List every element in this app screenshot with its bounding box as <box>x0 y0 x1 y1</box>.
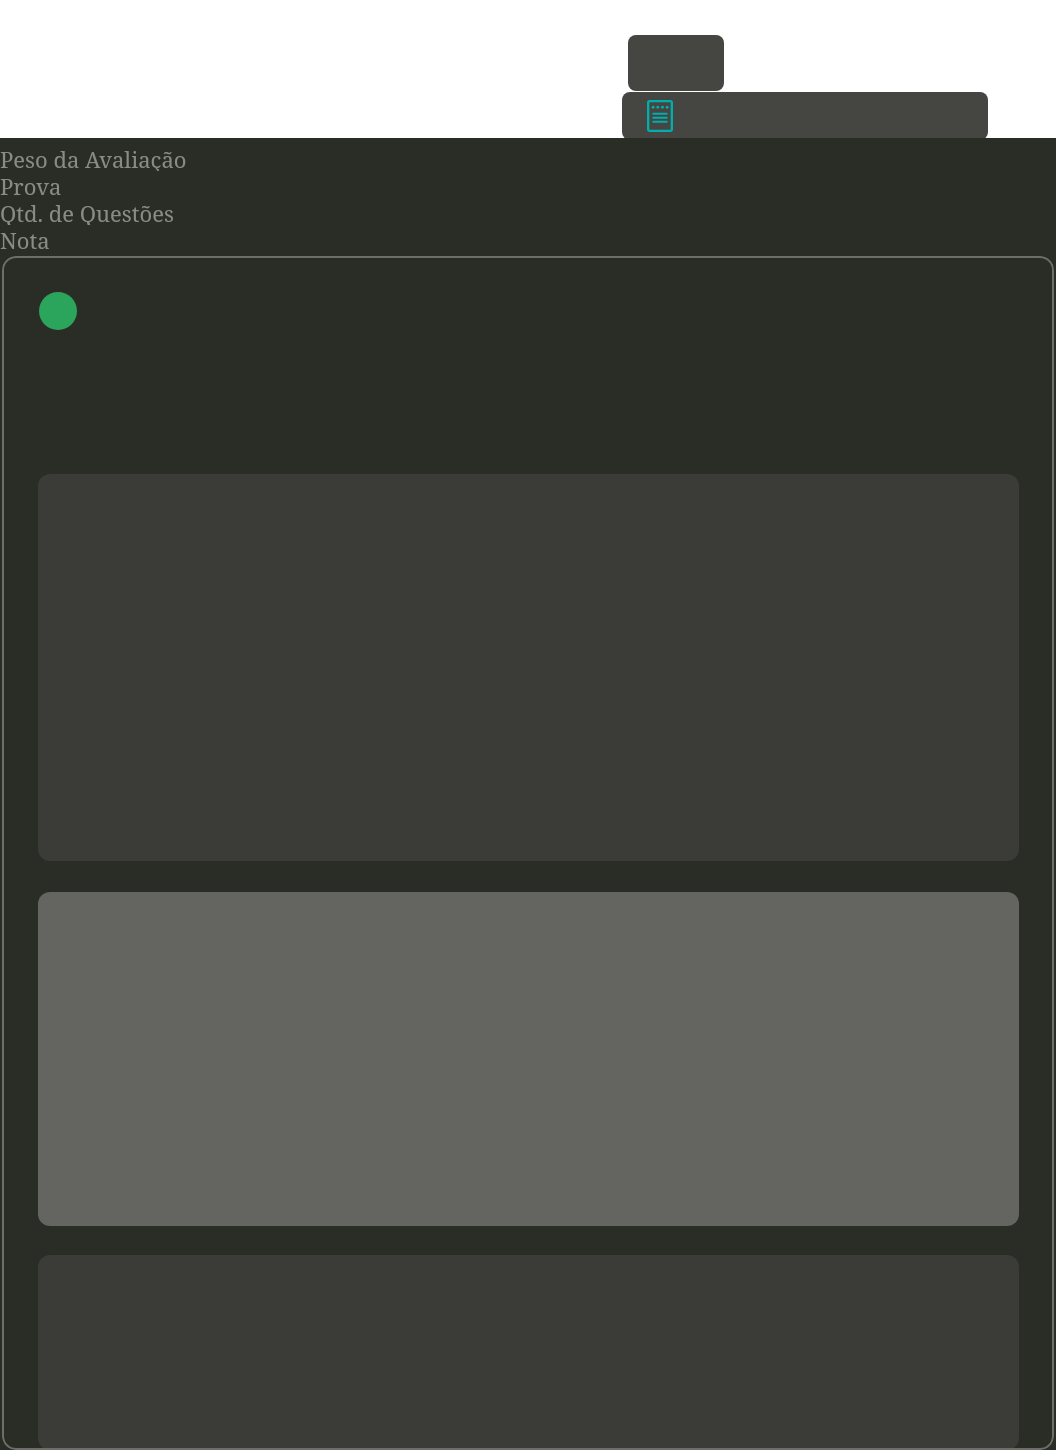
button[interactable]: Status <box>39 292 77 330</box>
staticText: Nota <box>0 225 1056 252</box>
staticText: Prova <box>0 171 1056 198</box>
button[interactable]: Tab <box>628 35 724 91</box>
staticText: Qtd. de Questões <box>0 198 1056 225</box>
staticText: Peso da Avaliação <box>0 144 1056 171</box>
button[interactable]: Notes <box>622 92 988 140</box>
button[interactable]: Section three <box>38 1255 1019 1450</box>
